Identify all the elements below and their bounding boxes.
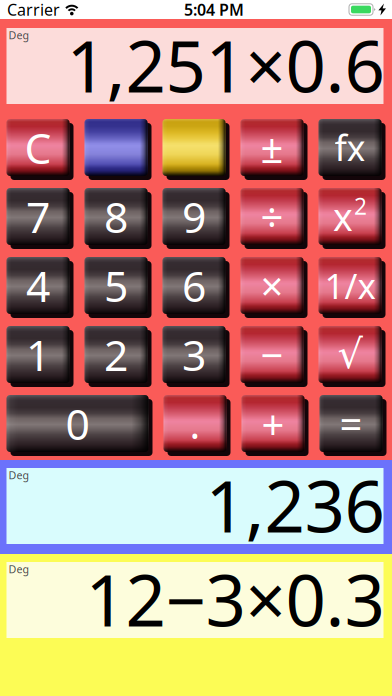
staticText: ÷ [260,190,283,243]
staticText: 5:04 PM [184,0,244,20]
staticText: 1/x [324,262,375,308]
staticText: . [189,397,200,450]
button[interactable]: − [240,326,307,387]
button[interactable]: 9 [162,188,229,249]
staticText: Deg [8,28,29,42]
staticText: x [333,192,353,241]
staticText: 9 [182,188,206,245]
staticText: 1,251×0.6 [66,18,384,112]
staticText: 0 [65,395,89,452]
button[interactable]: 4 [6,257,73,318]
button[interactable]: 6 [162,257,229,318]
button[interactable]: 1/x [318,257,385,318]
button[interactable] [84,119,151,180]
staticText: 2 [104,326,128,383]
button[interactable]: 7 [6,188,73,249]
staticText: 12−3×0.3 [85,552,384,646]
button[interactable]: 3 [162,326,229,387]
staticText: 1 [26,326,50,383]
staticText: + [261,397,284,450]
button[interactable] [162,119,229,180]
staticText: 2 [354,191,367,221]
staticText: − [260,328,283,381]
button[interactable]: 1 [6,326,73,387]
button[interactable]: 0 [6,395,152,456]
staticText: 3 [182,326,206,383]
staticText: 7 [26,188,50,245]
button[interactable]: 2 [84,326,151,387]
staticText: √ [337,332,362,377]
staticText: 8 [104,188,128,245]
button[interactable]: √ [318,326,385,387]
staticText: Deg [8,468,29,482]
button[interactable]: = [319,395,386,456]
staticText: C [24,119,51,176]
staticText: 1,236 [205,458,384,552]
staticText: fx [334,124,365,171]
staticText: 5 [104,257,128,314]
staticText: 4 [26,257,50,314]
button[interactable]: fx [318,119,385,180]
button[interactable]: 8 [84,188,151,249]
button[interactable]: ÷ [240,188,307,249]
button[interactable]: . [163,395,230,456]
button[interactable]: C [6,119,73,180]
button[interactable]: + [241,395,308,456]
button[interactable]: × [240,257,307,318]
staticText: = [339,397,362,450]
staticText: 6 [182,257,206,314]
staticText: Deg [8,562,29,576]
button[interactable]: 5 [84,257,151,318]
staticText: ± [260,121,283,174]
staticText: × [260,259,283,312]
staticText: Carrier [7,0,60,20]
button[interactable]: ± [240,119,307,180]
button[interactable]: x [318,188,385,249]
